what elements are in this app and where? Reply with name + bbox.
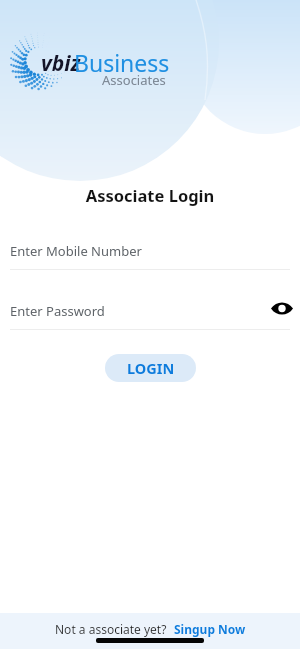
staticText: Associate Login	[0, 184, 300, 206]
staticText: Singup Now	[174, 621, 246, 637]
staticText: Associates	[102, 71, 166, 89]
staticText: Business	[74, 47, 170, 78]
button[interactable]: Enter Mobile Number	[10, 241, 290, 270]
staticText: vbiz	[41, 49, 81, 78]
staticText: Enter Password	[10, 302, 105, 320]
staticText: Enter Mobile Number	[10, 242, 142, 260]
button[interactable]: Show password	[267, 295, 297, 325]
button[interactable]: Singup Now	[174, 621, 246, 637]
button[interactable]: LOGIN	[105, 354, 196, 382]
staticText: LOGIN	[127, 358, 175, 378]
button[interactable]: Enter Password	[10, 295, 267, 325]
staticText: Not a associate yet?	[55, 621, 167, 637]
